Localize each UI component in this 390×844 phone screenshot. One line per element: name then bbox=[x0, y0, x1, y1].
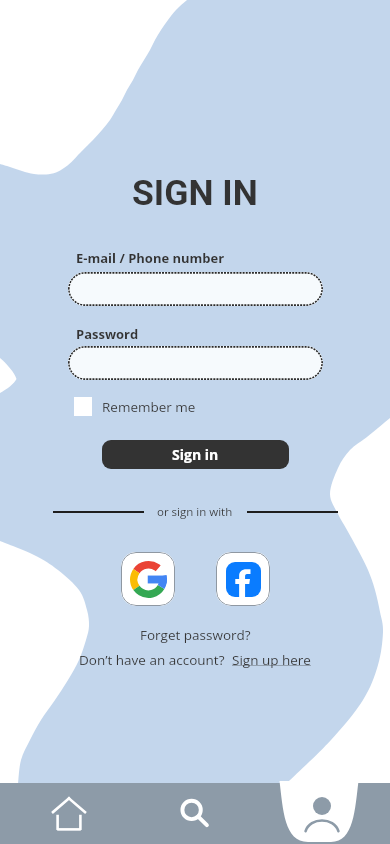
button[interactable]: Search bbox=[137, 783, 253, 844]
button[interactable]: Sign in with Facebook bbox=[216, 552, 270, 606]
staticText: Sign in bbox=[172, 445, 219, 464]
staticText: Remember me bbox=[102, 398, 196, 416]
staticText: E-mail / Phone number bbox=[76, 249, 225, 267]
staticText: SIGN IN bbox=[132, 172, 258, 214]
button[interactable]: Sign in bbox=[102, 440, 289, 469]
button[interactable]: Home bbox=[0, 783, 137, 844]
button[interactable]: Forget password? bbox=[140, 626, 251, 644]
staticText: Don’t have an account? bbox=[79, 651, 225, 669]
button[interactable]: Profile bbox=[253, 783, 390, 844]
button[interactable]: Remember me bbox=[74, 397, 196, 416]
staticText: or sign in with bbox=[157, 504, 233, 520]
button[interactable]: Sign in with Google bbox=[121, 552, 175, 606]
staticText: Password bbox=[76, 325, 139, 343]
button[interactable]: Sign up here bbox=[232, 651, 311, 669]
button[interactable]: Password bbox=[68, 346, 323, 380]
button[interactable]: E-mail or phone number bbox=[68, 272, 323, 306]
